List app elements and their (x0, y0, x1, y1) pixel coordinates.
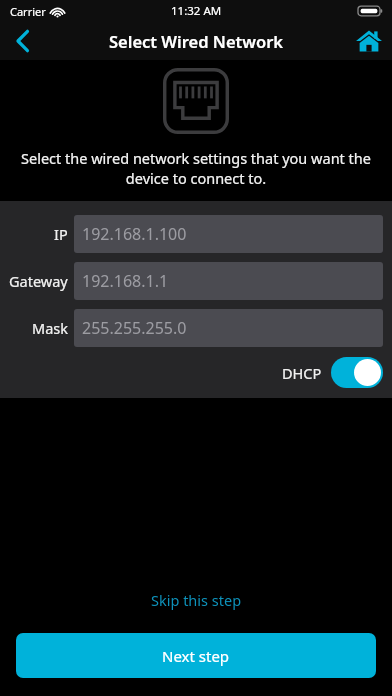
staticText: Select Wired Network (109, 30, 283, 52)
staticText: 192.168.1.1 (82, 270, 169, 292)
staticText: IP (54, 224, 68, 244)
button[interactable]: Home (346, 22, 392, 60)
staticText: DHCP (282, 363, 322, 383)
button[interactable]: Next step (16, 633, 376, 678)
staticText: 11:32 AM (171, 3, 222, 19)
button[interactable]: 255.255.255.0 (74, 309, 383, 347)
staticText: Gateway (9, 271, 68, 291)
button[interactable]: 192.168.1.1 (74, 262, 383, 300)
button[interactable]: Back (0, 22, 46, 60)
staticText: Select the wired network settings that y… (16, 148, 376, 188)
button[interactable]: Skip this step (0, 585, 392, 615)
button[interactable]: DHCP (282, 357, 383, 388)
staticText: Next step (162, 646, 230, 666)
staticText: Skip this step (151, 590, 242, 610)
button[interactable]: 192.168.1.100 (74, 215, 383, 253)
staticText: Mask (32, 318, 68, 338)
staticText: 192.168.1.100 (82, 223, 187, 245)
staticText: 255.255.255.0 (82, 317, 187, 339)
staticText: Carrier (10, 4, 46, 19)
